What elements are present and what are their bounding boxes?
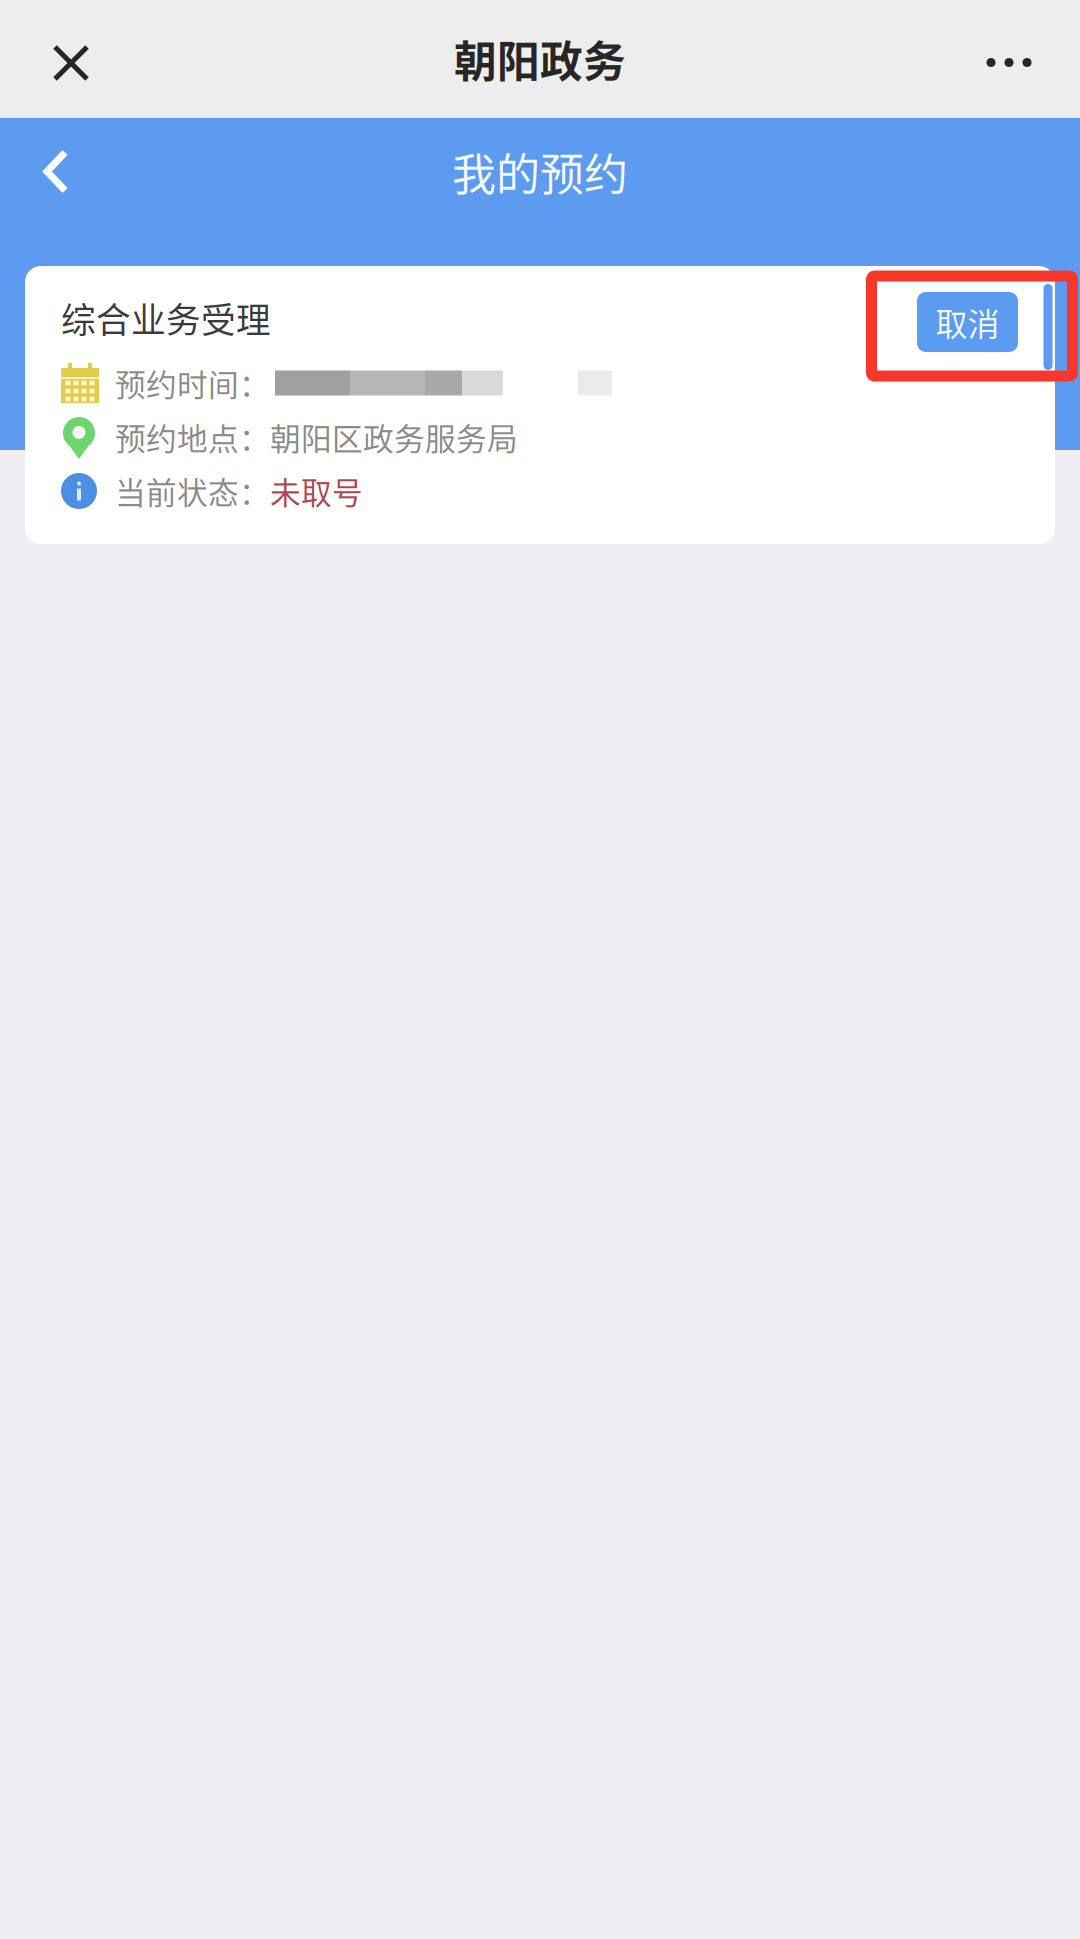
staticText: 预约时间： <box>115 361 270 405</box>
button[interactable]: More options <box>938 0 1080 118</box>
button[interactable]: Close <box>0 0 142 118</box>
staticText: 预约地点： <box>115 415 270 459</box>
staticText: 未取号 <box>270 469 363 513</box>
staticText: 当前状态： <box>115 469 270 513</box>
staticText: 我的预约 <box>452 140 628 203</box>
button[interactable]: 取消 <box>917 280 1018 356</box>
staticText: 取消 <box>935 299 999 345</box>
button[interactable]: Back <box>0 116 112 226</box>
staticText: 综合业务受理 <box>61 293 271 343</box>
staticText: 朝阳区政务服务局 <box>270 415 518 459</box>
staticText: 朝阳政务 <box>454 28 626 90</box>
